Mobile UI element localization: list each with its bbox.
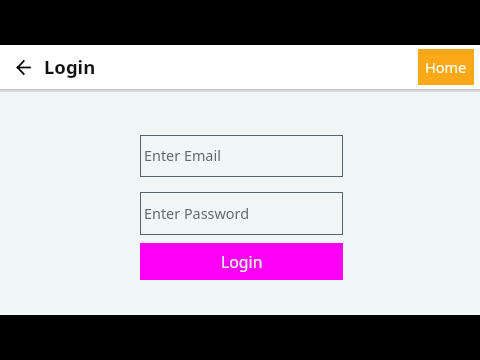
staticText: Login: [44, 54, 96, 79]
button[interactable]: Back: [0, 45, 44, 89]
staticText: Enter Email: [144, 146, 221, 166]
button[interactable]: Enter Email: [140, 135, 343, 177]
staticText: Home: [425, 57, 467, 77]
button[interactable]: Home: [418, 49, 474, 85]
staticText: Enter Password: [144, 204, 249, 224]
button[interactable]: Login: [140, 243, 343, 280]
staticText: Login: [221, 251, 263, 273]
button[interactable]: Enter Password: [140, 192, 343, 235]
